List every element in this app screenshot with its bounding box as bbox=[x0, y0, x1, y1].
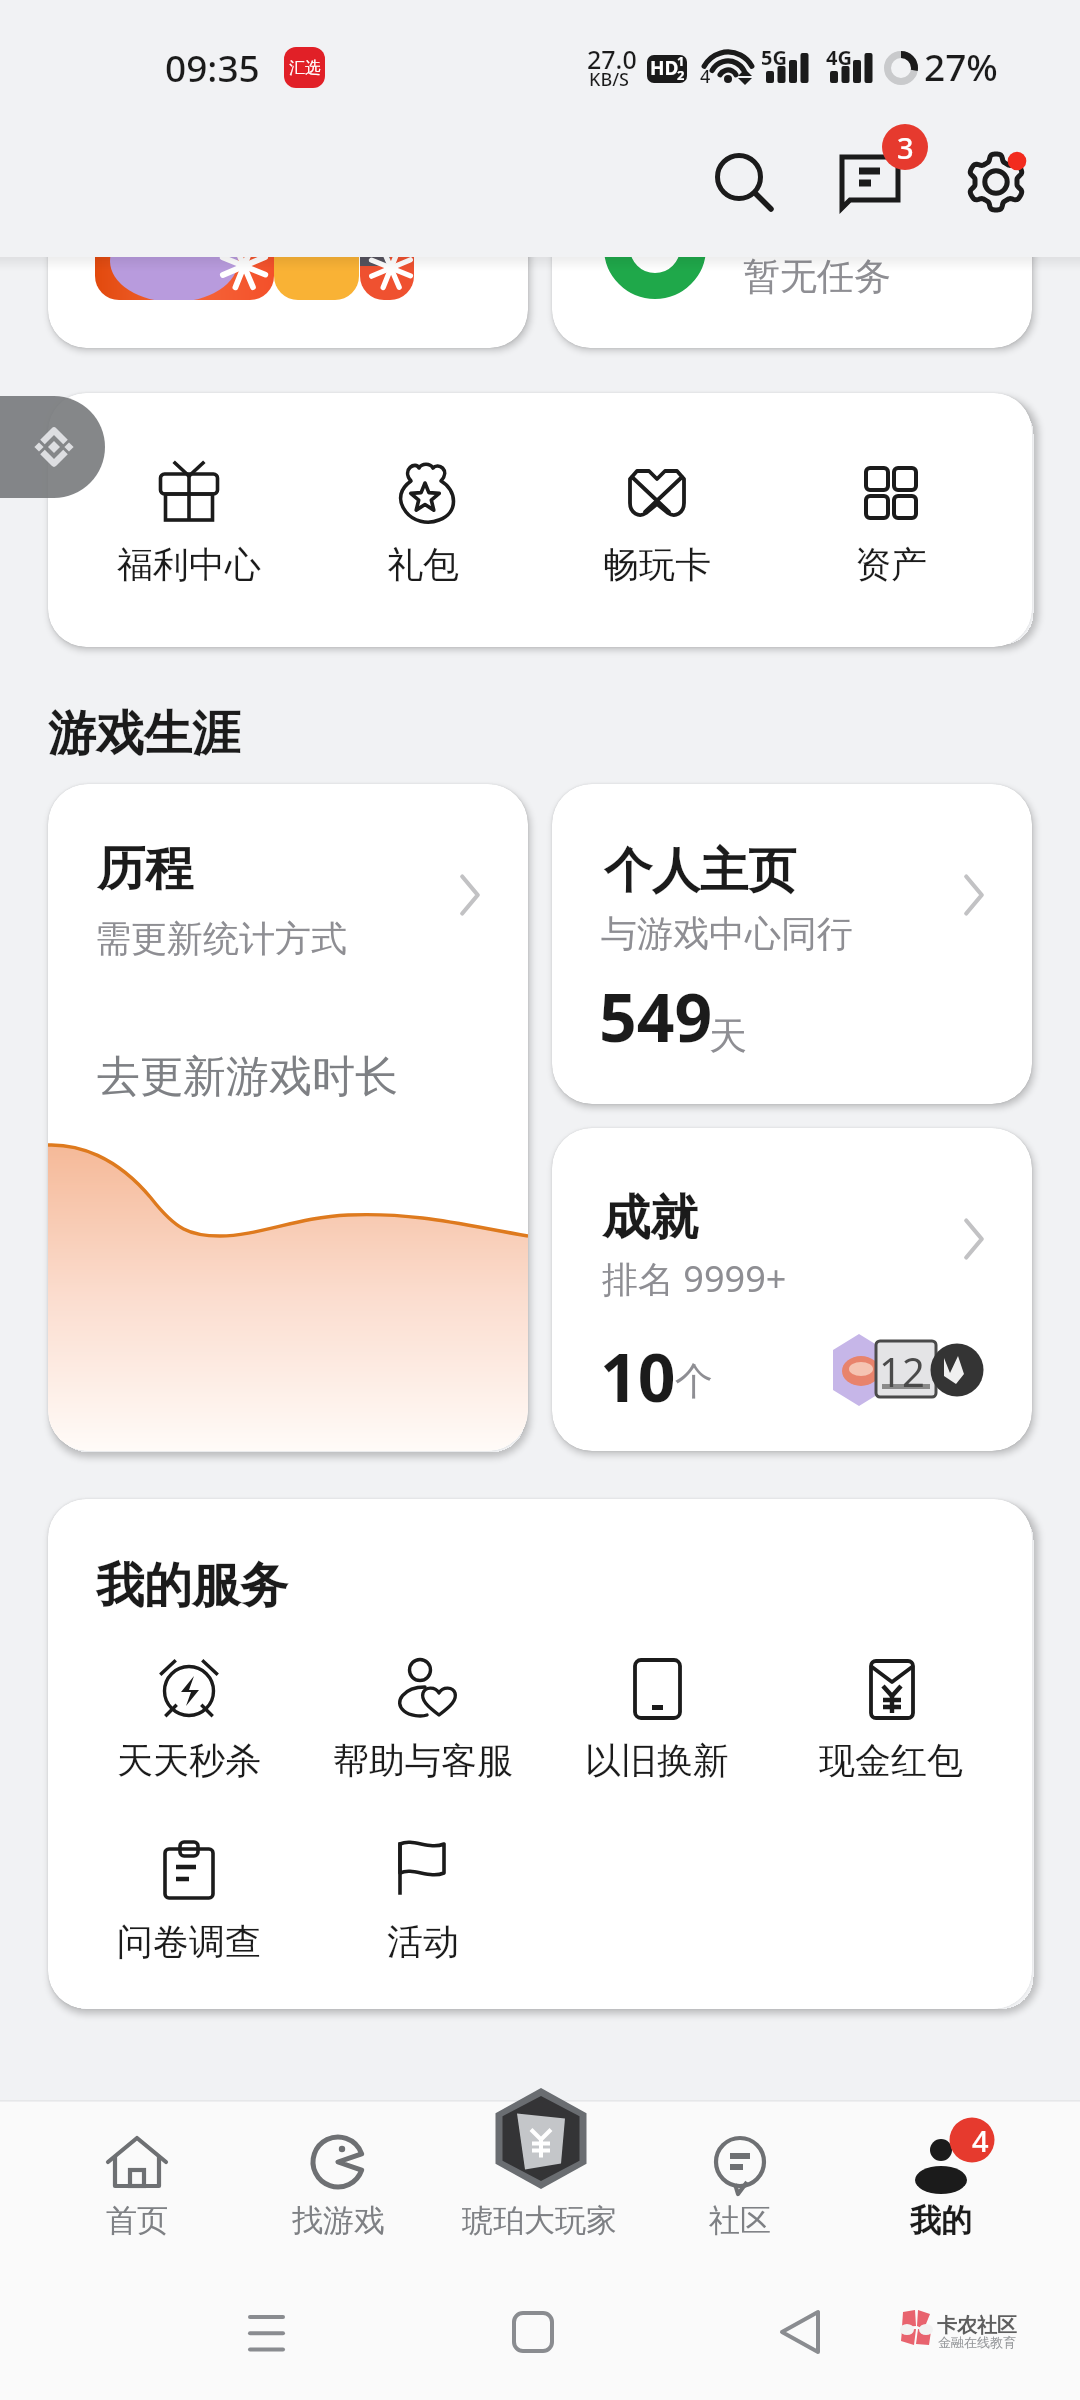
staticText: 帮助与客服 bbox=[333, 1738, 513, 1783]
button[interactable]: 历程 bbox=[48, 784, 528, 1451]
button[interactable]: Home bbox=[473, 2282, 593, 2382]
button[interactable] bbox=[48, 150, 528, 348]
button[interactable]: 畅玩卡 bbox=[540, 393, 774, 647]
staticText: 12 bbox=[879, 1344, 925, 1398]
button[interactable]: 礼包 bbox=[306, 393, 540, 647]
button[interactable]: Back bbox=[740, 2282, 860, 2382]
staticText: 09:35 bbox=[165, 42, 260, 92]
button[interactable]: 资产 bbox=[774, 393, 1008, 647]
staticText: 27.0 bbox=[587, 42, 637, 76]
staticText: 与游戏中心同行 bbox=[601, 911, 853, 956]
staticText: 现金红包 bbox=[819, 1738, 963, 1783]
staticText: 4G bbox=[826, 44, 852, 71]
button[interactable]: Floating shortcut bbox=[0, 396, 105, 498]
staticText: 汇选 bbox=[289, 58, 321, 78]
button[interactable]: 社区 bbox=[640, 2100, 840, 2255]
staticText: 成就 bbox=[602, 1188, 698, 1248]
staticText: 活动 bbox=[387, 1919, 459, 1964]
button[interactable]: 现金红包 bbox=[774, 1619, 1008, 1779]
staticText: 2 bbox=[677, 66, 685, 84]
staticText: 10 bbox=[600, 1331, 676, 1421]
staticText: 个 bbox=[675, 1357, 713, 1405]
staticText: 找游戏 bbox=[292, 2201, 385, 2240]
staticText: 天天秒杀 bbox=[117, 1738, 261, 1783]
button[interactable]: 12 bbox=[552, 1128, 1032, 1451]
staticText: 去更新游戏时长 bbox=[97, 1050, 398, 1104]
button[interactable]: Settings bbox=[946, 132, 1046, 232]
button[interactable]: Messages bbox=[820, 125, 940, 225]
button[interactable]: 以旧换新 bbox=[540, 1619, 774, 1779]
button[interactable]: 暂无任务 bbox=[552, 150, 1032, 348]
staticText: 游戏生涯 bbox=[48, 704, 240, 764]
staticText: 以旧换新 bbox=[585, 1738, 729, 1783]
staticText: 4 bbox=[972, 2121, 989, 2160]
staticText: 社区 bbox=[709, 2201, 771, 2240]
staticText: 4 bbox=[700, 64, 711, 89]
staticText: 我的 bbox=[910, 2201, 972, 2240]
button[interactable]: Search bbox=[690, 129, 790, 229]
staticText: 3 bbox=[897, 128, 914, 167]
staticText: 27% bbox=[924, 41, 998, 91]
button[interactable]: 首页 bbox=[37, 2100, 237, 2255]
staticText: 资产 bbox=[855, 542, 927, 587]
staticText: 畅玩卡 bbox=[603, 542, 711, 587]
staticText: 金融在线教育 bbox=[938, 2334, 1016, 2350]
staticText: 历程 bbox=[97, 839, 193, 899]
staticText: 我的服务 bbox=[96, 1556, 288, 1616]
staticText: 天 bbox=[709, 1012, 747, 1060]
staticText: 礼包 bbox=[387, 542, 459, 587]
button[interactable]: 我的 bbox=[841, 2100, 1041, 2255]
button[interactable]: 活动 bbox=[306, 1800, 540, 1960]
staticText: 排名 9999+ bbox=[602, 1254, 787, 1303]
staticText: 549 bbox=[599, 971, 713, 1061]
button[interactable]: 帮助与客服 bbox=[306, 1619, 540, 1779]
staticText: 5G bbox=[761, 44, 787, 71]
button[interactable]: 问卷调查 bbox=[72, 1800, 306, 1960]
button[interactable]: 琥珀大玩家 bbox=[439, 2100, 639, 2255]
button[interactable]: 天天秒杀 bbox=[72, 1619, 306, 1779]
staticText: 卡农社区 bbox=[937, 2313, 1017, 2338]
staticText: 琥珀大玩家 bbox=[462, 2201, 617, 2240]
staticText: 首页 bbox=[106, 2201, 168, 2240]
staticText: HD bbox=[650, 55, 679, 81]
staticText: 1 bbox=[677, 52, 685, 70]
staticText: KB/S bbox=[589, 67, 629, 92]
staticText: 问卷调查 bbox=[117, 1919, 261, 1964]
staticText: 暂无任务 bbox=[743, 253, 891, 300]
staticText: 福利中心 bbox=[117, 542, 261, 587]
staticText: 个人主页 bbox=[604, 841, 796, 901]
button[interactable]: Recent apps bbox=[206, 2282, 326, 2382]
staticText: 需更新统计方式 bbox=[95, 916, 347, 961]
button[interactable]: 个人主页 bbox=[552, 784, 1032, 1104]
button[interactable]: 福利中心 bbox=[72, 393, 306, 647]
button[interactable]: 找游戏 bbox=[238, 2100, 438, 2255]
